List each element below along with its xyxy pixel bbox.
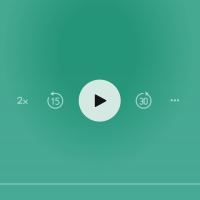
button[interactable]: More options	[158, 82, 192, 118]
button[interactable]: Go back 15 seconds	[38, 83, 72, 119]
button[interactable]: Playback speed 2×	[7, 82, 41, 118]
button[interactable]: Play	[77, 78, 123, 124]
button[interactable]: Skip forward 30 seconds	[127, 83, 161, 119]
